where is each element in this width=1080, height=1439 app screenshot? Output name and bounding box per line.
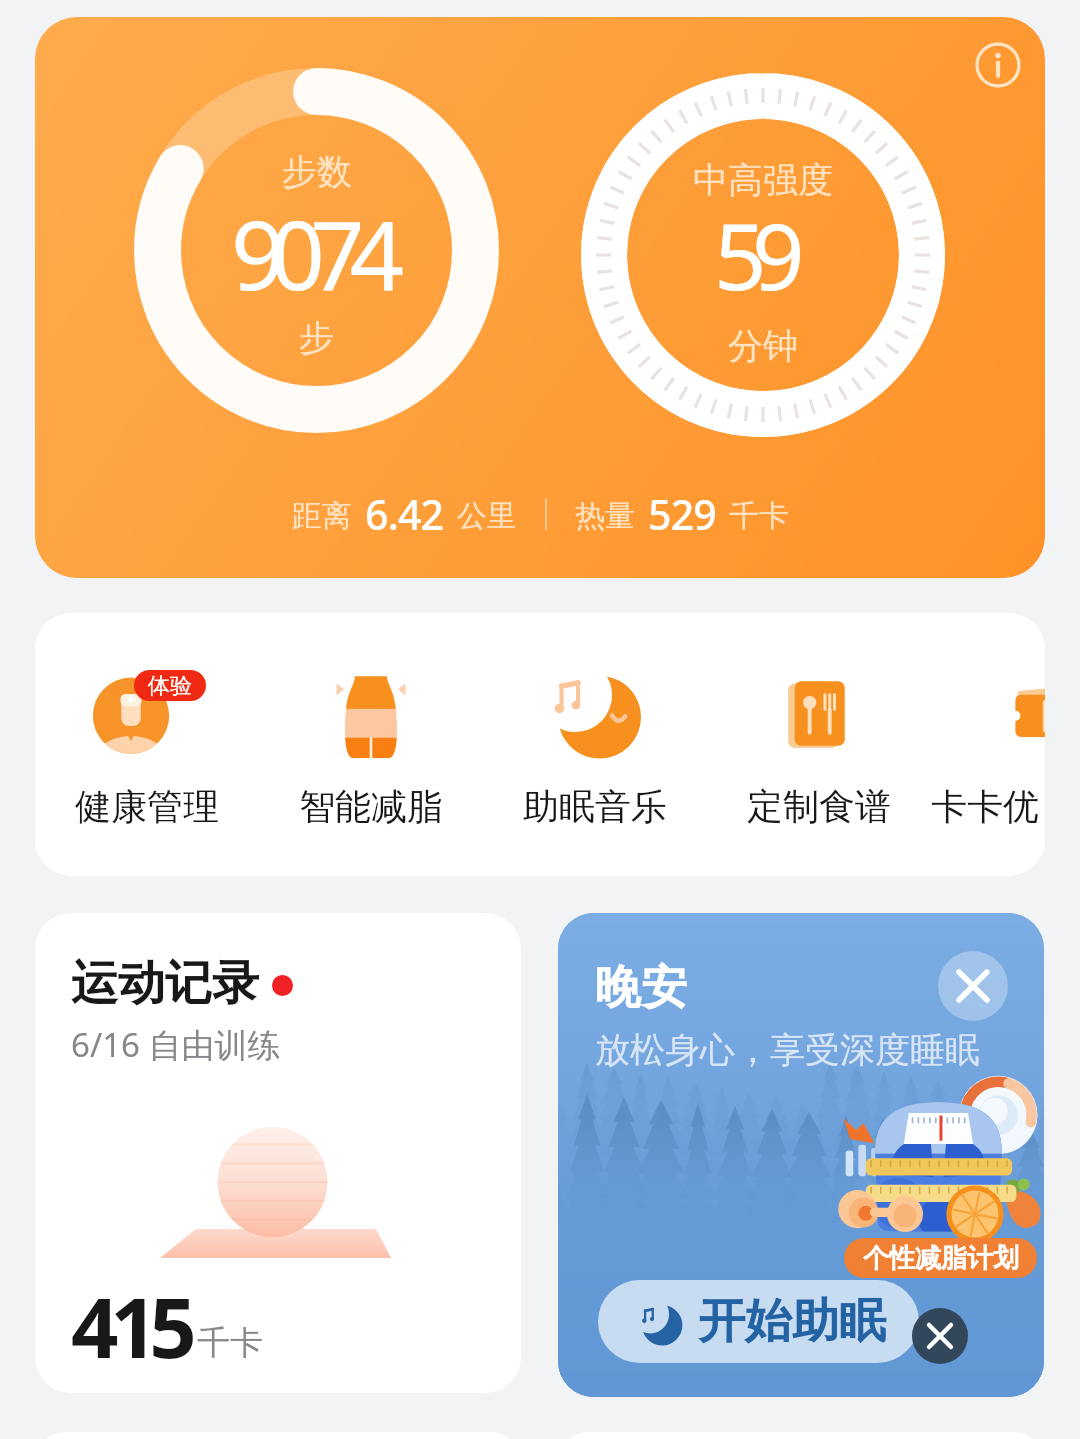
staticText: 体验 bbox=[148, 672, 192, 700]
staticText: 个性减脂计划 bbox=[863, 1242, 1019, 1275]
button[interactable]: 卡卡优选 bbox=[931, 613, 1045, 876]
staticText: 6/16 自由训练 bbox=[71, 1022, 281, 1067]
staticText: 健康管理 bbox=[75, 784, 219, 829]
button[interactable]: 开始助眠 bbox=[598, 1280, 919, 1363]
staticText: 6.42 bbox=[365, 486, 444, 542]
button[interactable] bbox=[558, 1432, 1044, 1439]
staticText: 运动记录 bbox=[71, 954, 259, 1013]
staticText: 热量 bbox=[575, 497, 635, 535]
button[interactable]: 运动记录 bbox=[35, 913, 521, 1393]
staticText: 步 bbox=[299, 316, 334, 360]
staticText: 距离 bbox=[292, 497, 352, 535]
staticText: 卡卡优选 bbox=[931, 784, 1045, 829]
staticText: 千卡 bbox=[729, 497, 789, 535]
staticText: 529 bbox=[648, 486, 716, 542]
button[interactable]: Dismiss bbox=[912, 1308, 968, 1364]
button[interactable]: 晚安 bbox=[558, 913, 1044, 1397]
staticText: 助眠音乐 bbox=[523, 784, 667, 829]
staticText: 公里 bbox=[457, 497, 517, 535]
staticText: 定制食谱 bbox=[747, 784, 891, 829]
button[interactable]: 助眠音乐 bbox=[483, 613, 707, 876]
staticText: 智能减脂 bbox=[299, 784, 443, 829]
button[interactable]: 智能减脂 bbox=[259, 613, 483, 876]
staticText: 千卡 bbox=[197, 1322, 263, 1364]
button[interactable]: 体验 bbox=[35, 613, 259, 876]
staticText: 分钟 bbox=[728, 324, 798, 368]
staticText: 中高强度 bbox=[693, 158, 833, 202]
staticText: 9074 bbox=[231, 188, 390, 317]
button[interactable]: 定制食谱 bbox=[707, 613, 931, 876]
staticText: 晚安 bbox=[595, 959, 687, 1017]
button[interactable]: Info bbox=[975, 42, 1021, 88]
button[interactable] bbox=[35, 1432, 521, 1439]
staticText: 415 bbox=[71, 1269, 189, 1382]
button[interactable]: Info bbox=[35, 17, 1045, 578]
button[interactable]: 个性减脂计划 bbox=[844, 1238, 1037, 1278]
staticText: 开始助眠 bbox=[698, 1292, 886, 1351]
button[interactable]: Close bbox=[938, 951, 1008, 1021]
staticText: 59 bbox=[714, 192, 790, 317]
staticText: 步数 bbox=[282, 150, 352, 194]
staticText: 放松身心，享受深度睡眠 bbox=[595, 1028, 980, 1072]
